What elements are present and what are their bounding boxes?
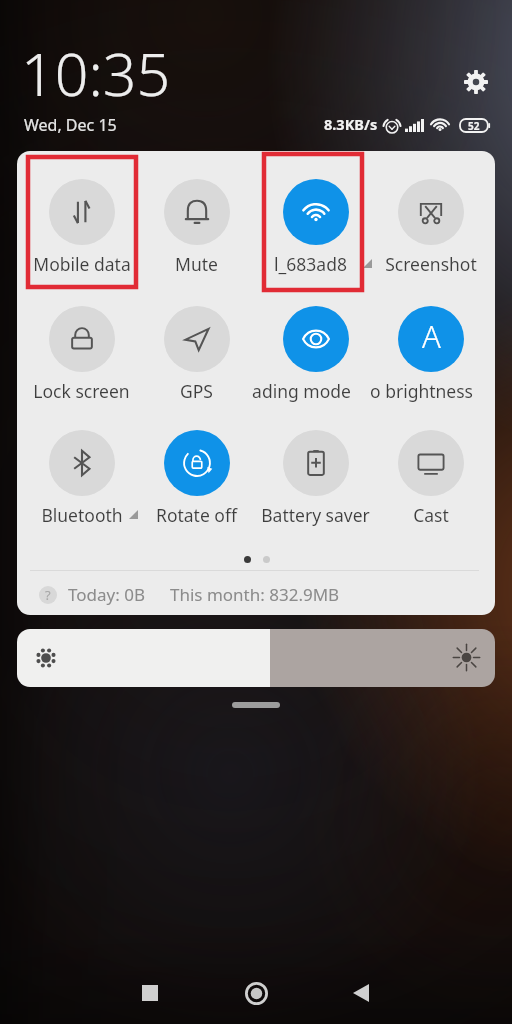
button[interactable]: Cast <box>371 416 490 528</box>
button[interactable]: Settings <box>458 64 494 100</box>
staticText: ading mode <box>252 379 351 403</box>
staticText: 8.3KB/s <box>324 114 378 134</box>
button[interactable]: Home <box>240 977 272 1009</box>
button[interactable]: A <box>371 292 490 404</box>
button[interactable]: ? <box>39 583 340 606</box>
staticText: Today: 0B <box>68 583 145 606</box>
staticText: GPS <box>180 379 213 403</box>
staticText: Screenshot <box>385 252 477 276</box>
button[interactable]: Rotate off <box>137 416 256 528</box>
button[interactable]: Lock screen <box>22 292 141 404</box>
staticText: l_683ad8 <box>274 252 347 276</box>
staticText: Battery saver <box>261 503 370 527</box>
button[interactable]: GPS <box>137 292 256 404</box>
staticText: Wed, Dec 15 <box>24 114 117 136</box>
staticText: 52 <box>468 119 480 132</box>
button[interactable]: Mute <box>137 165 256 277</box>
button[interactable]: Mobile data <box>22 165 141 277</box>
staticText: Bluetooth <box>41 503 123 527</box>
button[interactable]: Back <box>345 977 377 1009</box>
staticText: Rotate off <box>156 503 237 527</box>
staticText: o brightness <box>370 379 473 403</box>
button[interactable]: l_683ad8 <box>256 165 375 277</box>
staticText: This month: 832.9MB <box>170 583 340 606</box>
staticText: Cast <box>413 503 449 527</box>
staticText: Mute <box>175 252 218 276</box>
button[interactable]: Battery saver <box>256 416 375 528</box>
staticText: Mobile data <box>33 252 131 276</box>
button[interactable]: ading mode <box>256 292 375 404</box>
staticText: 10:35 <box>21 33 171 113</box>
staticText: Lock screen <box>33 379 130 403</box>
button[interactable]: Screenshot <box>371 165 490 277</box>
button[interactable]: Recents <box>134 977 166 1009</box>
staticText: A <box>422 315 441 357</box>
button[interactable]: Bluetooth <box>22 416 141 528</box>
staticText: ? <box>45 586 51 604</box>
button[interactable] <box>17 629 495 687</box>
